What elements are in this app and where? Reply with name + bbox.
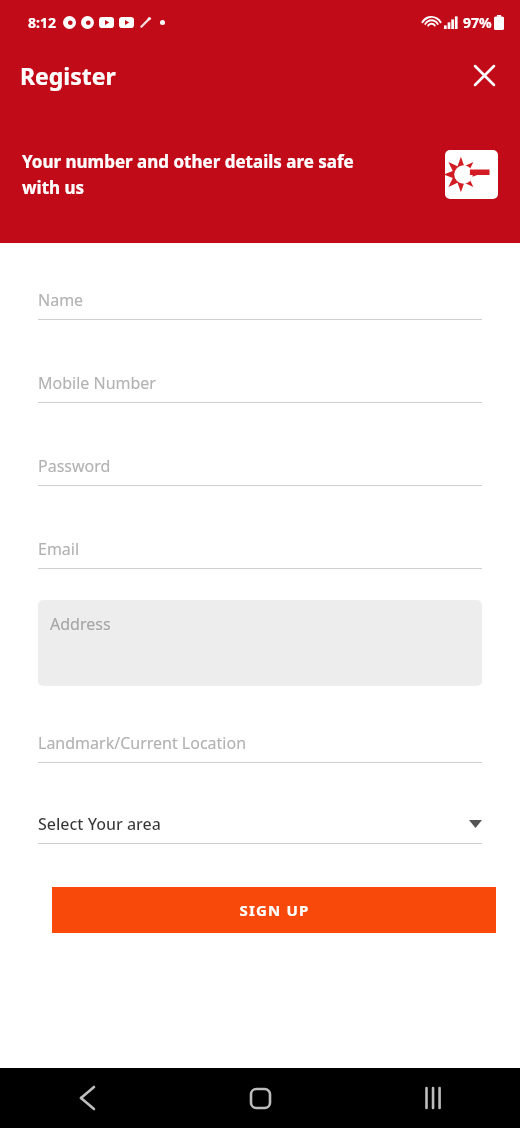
button[interactable]: Home bbox=[230, 1068, 290, 1128]
staticText: Select Your area bbox=[38, 813, 161, 835]
button[interactable]: Landmark/Current Location bbox=[38, 724, 482, 763]
button[interactable]: Mobile Number bbox=[38, 364, 482, 403]
staticText: Password bbox=[38, 455, 111, 477]
button[interactable]: Name bbox=[38, 281, 482, 320]
staticText: SIGN UP bbox=[239, 900, 310, 920]
staticText: 97% bbox=[463, 13, 492, 32]
button[interactable]: SIGN UP bbox=[52, 887, 496, 933]
button[interactable]: Password bbox=[38, 447, 482, 486]
button[interactable]: Back bbox=[57, 1068, 117, 1128]
staticText: Mobile Number bbox=[38, 372, 156, 394]
button[interactable]: Recent apps bbox=[403, 1068, 463, 1128]
staticText: Email bbox=[38, 538, 80, 560]
staticText: Your number and other details are safe w… bbox=[22, 150, 412, 199]
button[interactable]: Email bbox=[38, 530, 482, 569]
staticText: Address bbox=[50, 613, 111, 635]
staticText: Landmark/Current Location bbox=[38, 732, 247, 754]
staticText: Name bbox=[38, 289, 84, 311]
button[interactable]: Close bbox=[464, 55, 504, 95]
staticText: 8:12 bbox=[28, 13, 56, 32]
button[interactable]: App logo bbox=[445, 150, 498, 199]
button[interactable]: Select Your area bbox=[38, 805, 482, 844]
button[interactable]: Address bbox=[38, 600, 482, 686]
staticText: Register bbox=[20, 60, 116, 91]
